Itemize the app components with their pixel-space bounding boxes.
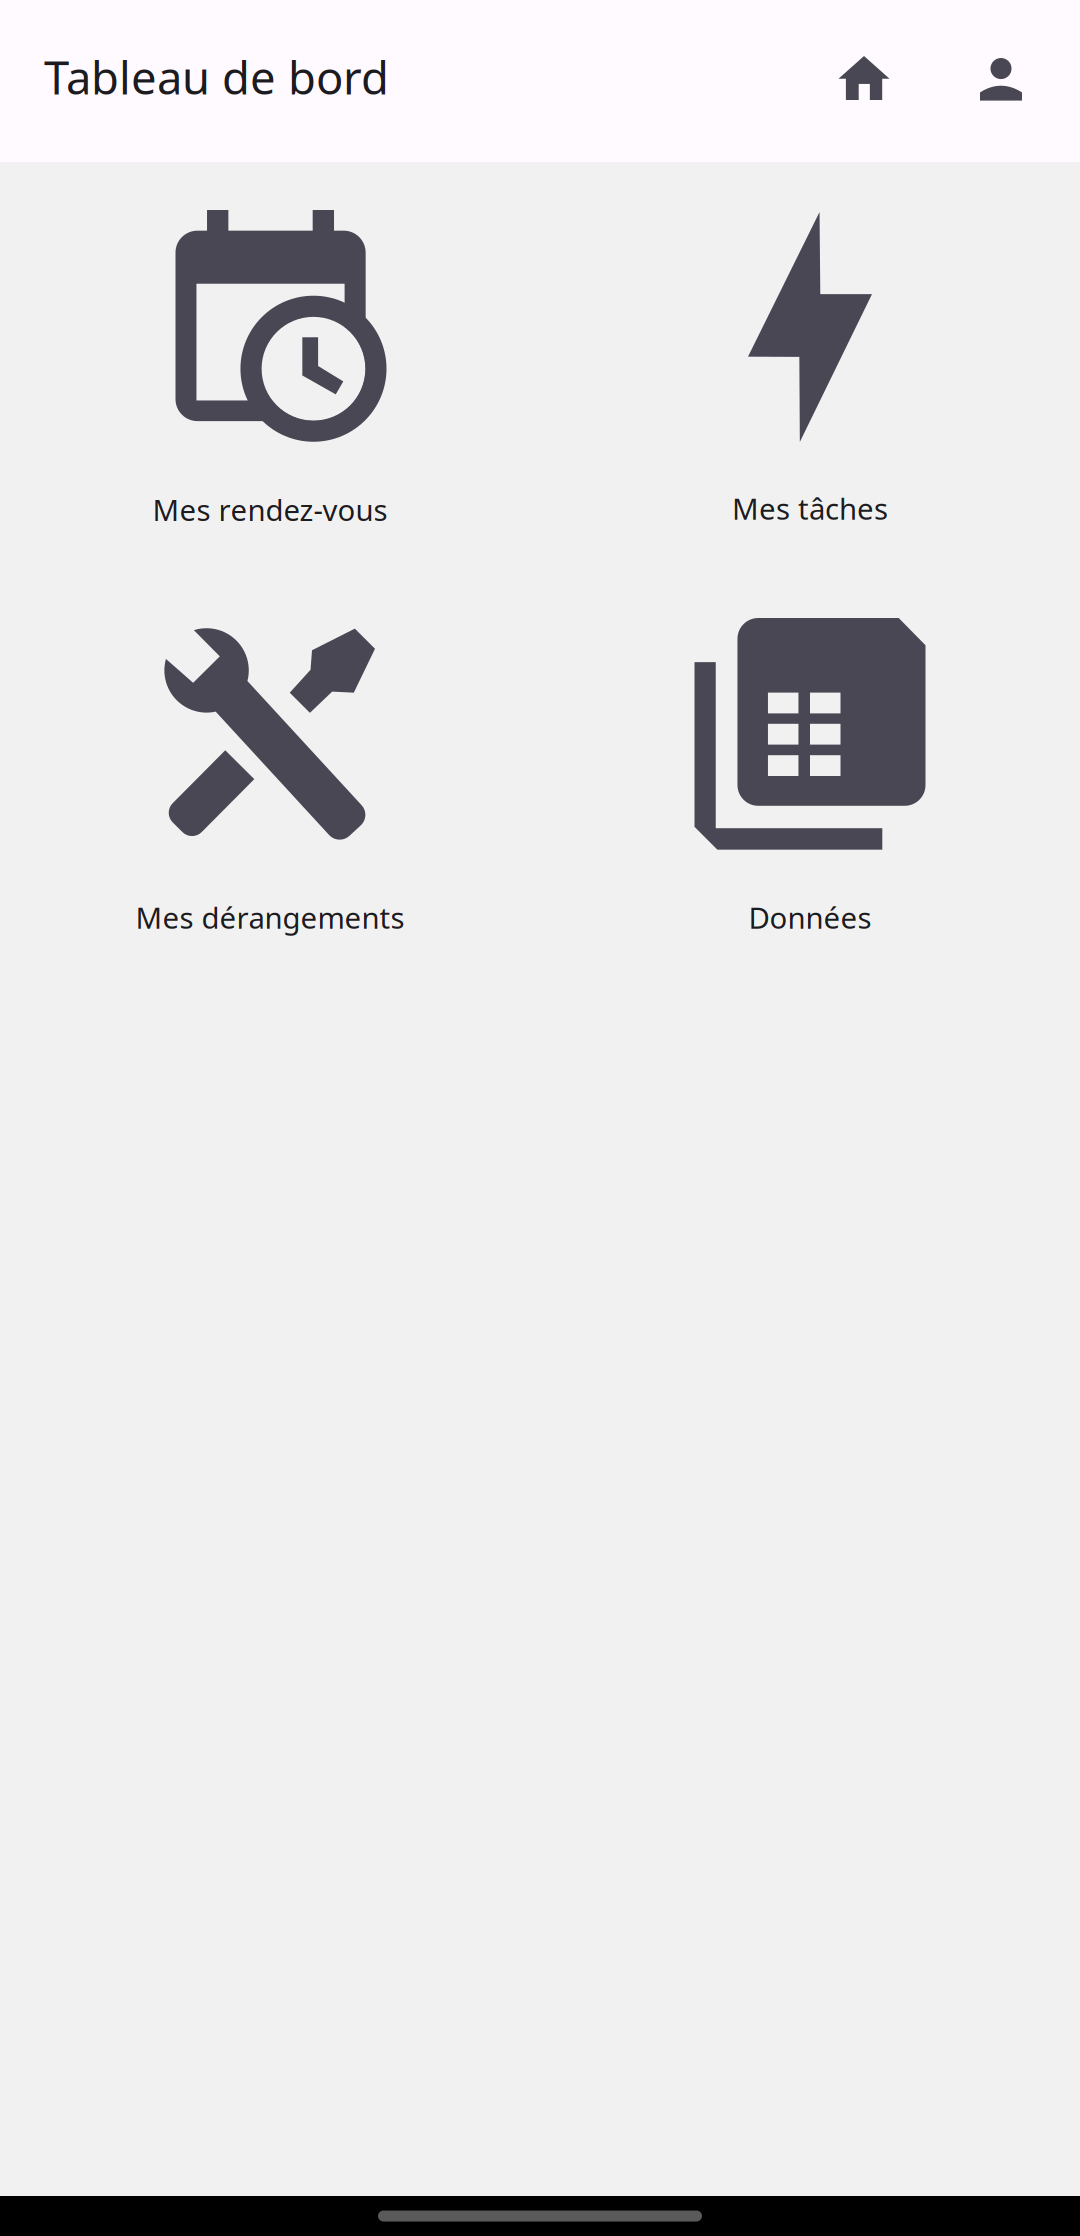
staticText: Données	[748, 898, 871, 937]
staticText: Mes tâches	[732, 489, 888, 528]
button[interactable]: Mes dérangements	[0, 572, 540, 982]
button[interactable]: Mes tâches	[540, 162, 1080, 572]
button[interactable]: Accueil	[810, 27, 918, 135]
staticText: Mes dérangements	[135, 898, 404, 937]
button[interactable]: Données	[540, 572, 1080, 982]
staticText: Mes rendez-vous	[152, 490, 387, 529]
staticText: Tableau de bord	[44, 47, 389, 107]
button[interactable]: Mes rendez-vous	[0, 162, 540, 572]
button[interactable]: Profil	[947, 27, 1055, 135]
